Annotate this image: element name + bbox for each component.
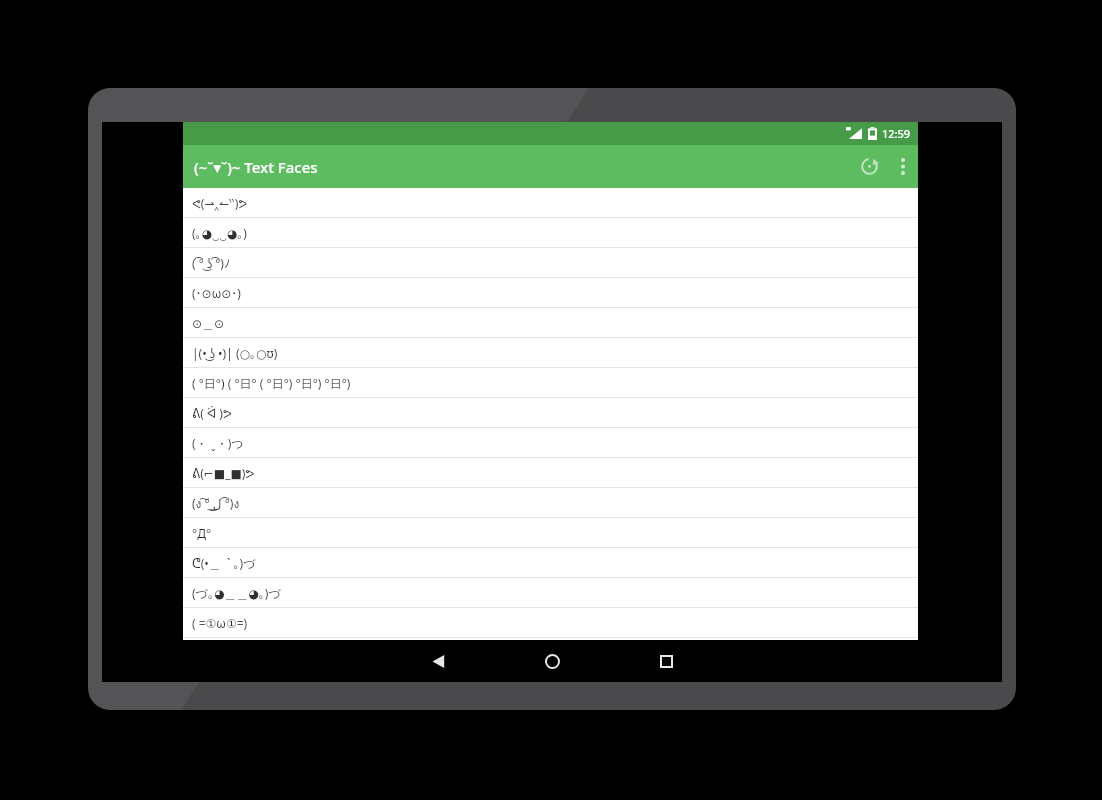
staticText: ( =①ω①=) xyxy=(192,615,248,631)
button[interactable]: (｡◕‿‿◕｡) xyxy=(183,218,918,248)
staticText: ᕙ(⇀‸↼‵‵)ᕗ xyxy=(192,195,248,211)
staticText: ᕕ( ᐛ )ᕗ xyxy=(192,405,232,421)
staticText: ᕕ(⌐■_■)ᕗ xyxy=(192,465,255,481)
button[interactable]: Home xyxy=(529,640,575,682)
button[interactable]: Back xyxy=(415,640,461,682)
staticText: (~˘▾˘)~ Text Faces xyxy=(194,157,318,177)
button[interactable]: (･⊙ω⊙･) xyxy=(183,278,918,308)
staticText: 12:59 xyxy=(882,126,911,141)
staticText: (･⊙ω⊙･) xyxy=(192,285,241,301)
button[interactable]: More options xyxy=(888,145,918,188)
staticText: ⊙＿⊙ xyxy=(192,316,225,331)
staticText: °Д° xyxy=(192,525,212,541)
button[interactable]: ᕕ(⌐■_■)ᕗ xyxy=(183,458,918,488)
button[interactable]: |(• ͜ʖ •)| (○｡○ʊ) xyxy=(183,338,918,368)
staticText: ( ͡° ͜ʖ ͡°)ﾉ xyxy=(192,255,230,271)
button[interactable]: ( ͡° ͜ʖ ͡°)ﾉ xyxy=(183,248,918,278)
staticText: (｡◕‿‿◕｡) xyxy=(192,225,247,241)
button[interactable]: °Д° xyxy=(183,518,918,548)
staticText: (づ｡◕＿＿◕｡)づ xyxy=(192,585,281,601)
staticText: ( °日°) ( °日° ( °日°) °日°) °日°) xyxy=(192,375,351,391)
button[interactable]: ᕦ(•＿ ˋ ｡)づ xyxy=(183,548,918,578)
staticText: (ง ͠° ͟ل͜ ͡°)ง xyxy=(192,494,240,513)
button[interactable]: ᕙ(⇀‸↼‵‵)ᕗ xyxy=(183,188,918,218)
button[interactable]: ( =①ω①=) xyxy=(183,608,918,638)
button[interactable]: (づ｡◕＿＿◕｡)づ xyxy=(183,578,918,608)
button[interactable]: (ง ͠° ͟ل͜ ͡°)ง xyxy=(183,488,918,518)
staticText: |(• ͜ʖ •)| (○｡○ʊ) xyxy=(192,345,278,361)
staticText: (・ ˬ・)つ xyxy=(192,435,244,451)
button[interactable]: ( °日°) ( °日° ( °日°) °日°) °日°) xyxy=(183,368,918,398)
button[interactable]: ⊙＿⊙ xyxy=(183,308,918,338)
button[interactable]: Refresh xyxy=(850,145,888,188)
staticText: ᕦ(•＿ ˋ ｡)づ xyxy=(192,555,256,571)
button[interactable]: (・ ˬ・)つ xyxy=(183,428,918,458)
button[interactable]: Recent apps xyxy=(643,640,689,682)
button[interactable]: ᕕ( ᐛ )ᕗ xyxy=(183,398,918,428)
